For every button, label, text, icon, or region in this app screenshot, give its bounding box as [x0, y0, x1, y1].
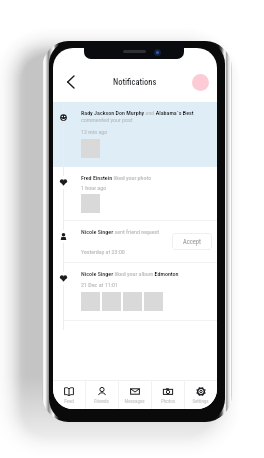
- staticText: 12 min ago: [81, 128, 108, 135]
- staticText: Settings: [192, 398, 209, 404]
- staticText: Friends: [94, 398, 109, 404]
- button[interactable]: Back: [59, 71, 81, 93]
- staticText: 1 hour ago: [81, 184, 107, 191]
- staticText: Photos: [161, 398, 175, 404]
- button[interactable]: Messages: [118, 380, 151, 409]
- button[interactable]: Settings: [184, 380, 217, 409]
- staticText: 21 Dec at 11:01: [81, 281, 118, 288]
- staticText: Notifications: [113, 77, 157, 87]
- staticText: Feed: [64, 398, 74, 404]
- button[interactable]: Photos: [151, 380, 184, 409]
- button[interactable]: Friends: [85, 380, 118, 409]
- button[interactable]: Nicole Singer sent friend request: [53, 221, 217, 263]
- button[interactable]: Fred Einstein liked your photo: [53, 167, 217, 221]
- staticText: Accept: [183, 238, 201, 246]
- staticText: commented your post: [81, 116, 133, 123]
- button[interactable]: Feed: [53, 380, 85, 409]
- staticText: Yesterday at 23:00: [81, 248, 125, 255]
- staticText: Fred Einstein liked your photo: [81, 174, 152, 181]
- staticText: Rady Jackson Don Murphy and Alabama´s Be…: [81, 109, 194, 116]
- staticText: Messages: [124, 398, 145, 404]
- staticText: Nicole Singer liked your album Edmonton: [81, 270, 179, 277]
- button[interactable]: Rady Jackson Don Murphy and Alabama´s Be…: [53, 102, 217, 167]
- button[interactable]: Nicole Singer liked your album Edmonton: [53, 263, 217, 321]
- button[interactable]: Accept: [172, 233, 212, 250]
- button[interactable]: Profile: [192, 74, 209, 91]
- staticText: Nicole Singer sent friend request: [81, 228, 160, 235]
